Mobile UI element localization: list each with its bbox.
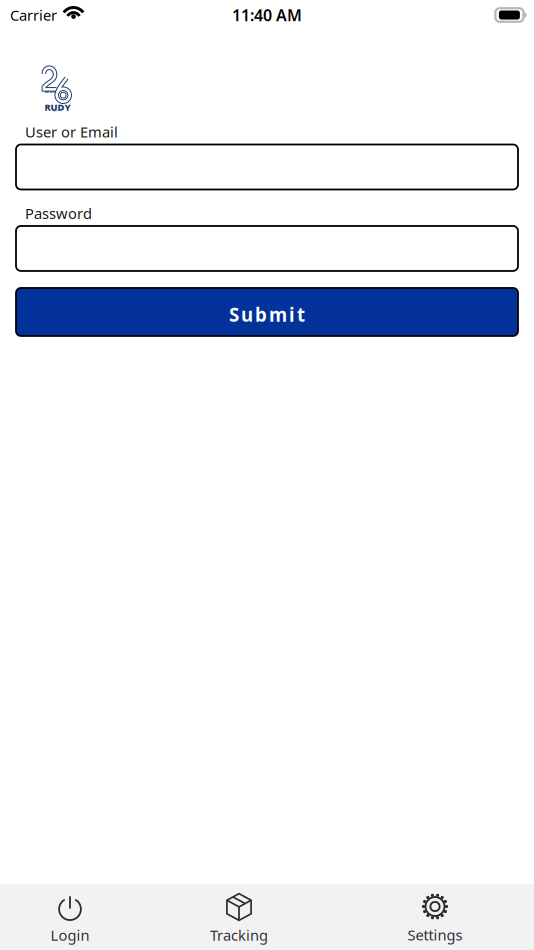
button[interactable]: Settings	[338, 884, 532, 950]
staticText: Login	[50, 925, 89, 945]
button[interactable]: Submit	[0, 288, 534, 336]
staticText: RUDY	[44, 101, 70, 113]
staticText: años	[45, 89, 55, 94]
staticText: Password	[25, 203, 92, 223]
staticText: Submit	[229, 302, 305, 327]
button[interactable]: Password	[0, 226, 534, 271]
button[interactable]: Tracking	[140, 884, 338, 950]
staticText: Settings	[407, 925, 462, 944]
staticText: Tracking	[210, 925, 268, 945]
button[interactable]: Login	[0, 884, 140, 950]
button[interactable]: User or Email	[0, 144, 534, 189]
staticText: Carrier	[10, 5, 57, 25]
staticText: User or Email	[25, 122, 118, 141]
staticText: 11:40 AM	[232, 4, 302, 26]
